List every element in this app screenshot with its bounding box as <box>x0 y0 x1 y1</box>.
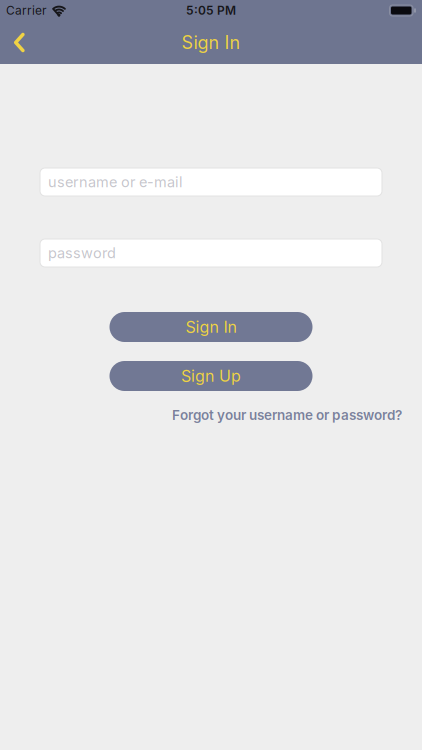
button[interactable]: Sign Up <box>109 361 312 391</box>
staticText: username or e-mail <box>48 173 183 191</box>
staticText: Sign Up <box>181 366 241 386</box>
staticText: Sign In <box>185 317 236 337</box>
staticText: Forgot your username or password? <box>172 407 402 423</box>
button[interactable]: password <box>40 239 382 267</box>
button[interactable]: username or e-mail <box>40 168 382 196</box>
button[interactable]: Forgot your username or password? <box>172 407 402 423</box>
staticText: 5:05 PM <box>186 3 236 18</box>
button[interactable] <box>0 31 35 53</box>
staticText: Carrier <box>6 3 47 18</box>
button[interactable]: Sign In <box>109 312 312 342</box>
staticText: Sign In <box>181 32 240 53</box>
staticText: password <box>48 244 116 262</box>
